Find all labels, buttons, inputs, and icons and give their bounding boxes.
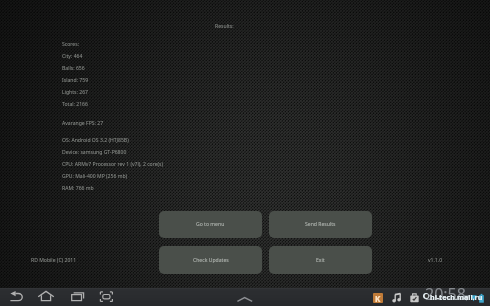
staticText: Send Results: [305, 221, 336, 228]
staticText: Total: 2166: [62, 101, 88, 108]
button[interactable]: Screenshot: [94, 288, 120, 306]
staticText: Device: samsung GT-P6800: [62, 149, 127, 156]
staticText: Results:: [215, 23, 234, 30]
staticText: RAM: 766 mb: [62, 185, 94, 192]
staticText: Exit: [316, 257, 325, 264]
staticText: OS: Android OS 3.2 (HTJ85B): [62, 137, 129, 144]
staticText: Island: 759: [62, 77, 89, 84]
staticText: hi-tech.mail.ru: [430, 292, 483, 302]
staticText: RD Mobile (C) 2011: [31, 257, 77, 264]
button[interactable]: Check Updates: [159, 246, 262, 274]
staticText: 20:58: [425, 283, 466, 301]
staticText: K: [375, 293, 381, 303]
button[interactable]: Kies notification: [373, 293, 383, 303]
button[interactable]: Show notifications: [236, 288, 256, 306]
staticText: CPU: ARMv7 Processor rev 1 (v7l), 2 core…: [62, 161, 164, 168]
button[interactable]: Go to menu: [159, 211, 262, 238]
staticText: Go to menu: [196, 221, 225, 228]
staticText: GPU: Mali-400 MP (256 mb): [62, 173, 128, 180]
staticText: Balls: 656: [62, 65, 85, 72]
staticText: v1.1.0: [428, 257, 443, 264]
staticText: Scores:: [62, 41, 80, 48]
button[interactable]: Back: [4, 288, 30, 306]
button[interactable]: Recent apps: [65, 288, 91, 306]
staticText: City: 464: [62, 53, 83, 60]
staticText: Avarange FPS: 27: [62, 120, 104, 127]
button[interactable]: Send Results: [269, 211, 372, 238]
button[interactable]: Home: [33, 288, 59, 306]
button[interactable]: Exit: [269, 246, 372, 274]
staticText: Lights: 267: [62, 89, 88, 96]
staticText: Check Updates: [193, 257, 229, 264]
